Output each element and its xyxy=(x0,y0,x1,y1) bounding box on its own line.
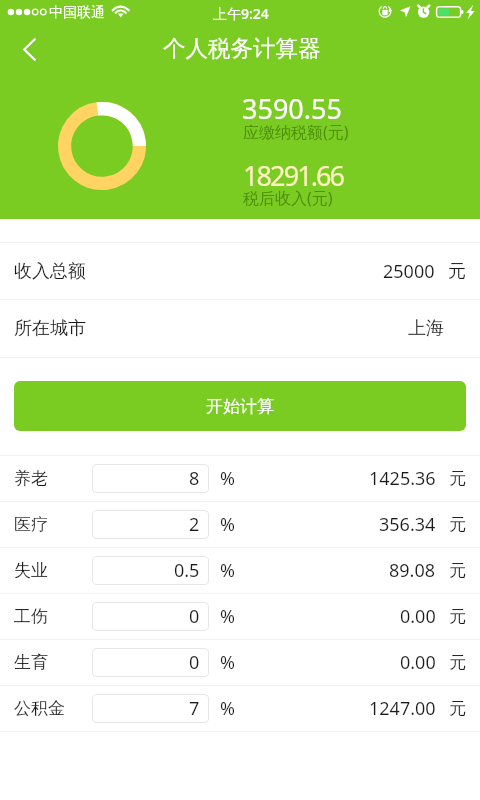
staticText: % xyxy=(220,650,235,675)
staticText: 个人税务计算器 xyxy=(163,34,321,62)
button[interactable]: 工伤 xyxy=(0,594,480,639)
button[interactable]: 失业 xyxy=(0,548,480,593)
staticText: 1247.00 xyxy=(369,696,436,721)
staticText: 3590.55 xyxy=(242,90,342,127)
staticText: % xyxy=(220,466,235,491)
staticText: 生育 xyxy=(14,652,92,673)
button[interactable]: 0 xyxy=(92,648,209,677)
button[interactable]: 8 xyxy=(92,464,209,493)
staticText: % xyxy=(220,604,235,629)
staticText: % xyxy=(220,696,235,721)
staticText: 开始计算 xyxy=(206,396,274,417)
staticText: 356.34 xyxy=(379,512,436,537)
staticText: 收入总额 xyxy=(14,260,86,283)
button[interactable]: 生育 xyxy=(0,640,480,685)
staticText: % xyxy=(220,558,235,583)
staticText: 所在城市 xyxy=(14,317,86,340)
staticText: 7 xyxy=(189,696,200,721)
staticText: 0.00 xyxy=(400,650,436,675)
staticText: 89.08 xyxy=(389,558,436,583)
staticText: 工伤 xyxy=(14,606,92,627)
button[interactable]: 7 xyxy=(92,694,209,723)
staticText: 养老 xyxy=(14,468,92,489)
button[interactable]: 2 xyxy=(92,510,209,539)
staticText: 2 xyxy=(189,512,200,537)
staticText: 元 xyxy=(449,560,466,581)
staticText: 应缴纳税额(元) xyxy=(243,121,349,143)
staticText: 上海 xyxy=(408,317,444,340)
button[interactable]: 0 xyxy=(92,602,209,631)
button[interactable]: 医疗 xyxy=(0,502,480,547)
staticText: 元 xyxy=(448,260,466,283)
staticText: 上午9:24 xyxy=(213,4,269,23)
staticText: 医疗 xyxy=(14,514,92,535)
staticText: % xyxy=(220,512,235,537)
button[interactable]: Back xyxy=(7,27,51,71)
staticText: 8 xyxy=(189,466,200,491)
staticText: 0 xyxy=(189,650,200,675)
staticText: 1425.36 xyxy=(369,466,436,491)
staticText: 税后收入(元) xyxy=(243,187,333,209)
staticText: 元 xyxy=(449,652,466,673)
staticText: 中国联通 xyxy=(49,4,105,22)
staticText: 0 xyxy=(189,604,200,629)
staticText: 公积金 xyxy=(14,698,92,719)
button[interactable]: 0.5 xyxy=(92,556,209,585)
staticText: 0.5 xyxy=(174,558,200,583)
staticText: 元 xyxy=(449,698,466,719)
button[interactable]: 所在城市 xyxy=(0,300,480,357)
button[interactable]: 收入总额 xyxy=(0,243,480,299)
staticText: 元 xyxy=(449,468,466,489)
staticText: 失业 xyxy=(14,560,92,581)
staticText: 0.00 xyxy=(400,604,436,629)
staticText: 元 xyxy=(449,606,466,627)
button[interactable]: 养老 xyxy=(0,456,480,501)
staticText: 25000 xyxy=(383,259,435,284)
staticText: 元 xyxy=(449,514,466,535)
button[interactable]: 开始计算 xyxy=(14,381,466,431)
button[interactable]: 公积金 xyxy=(0,686,480,731)
staticText: 18291.66 xyxy=(243,157,344,194)
